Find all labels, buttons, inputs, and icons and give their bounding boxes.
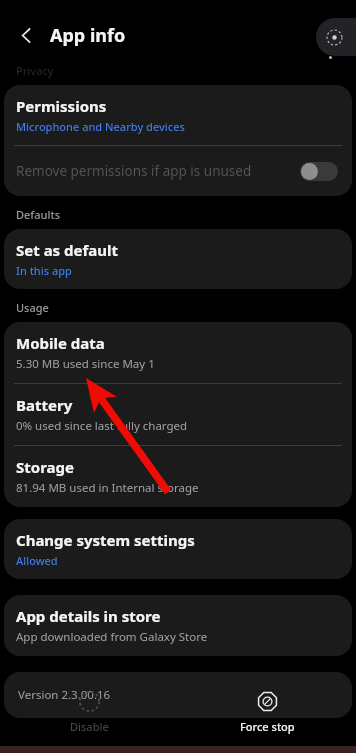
staticText: 81.94 MB used in Internal storage [16, 480, 199, 496]
staticText: Defaults [16, 207, 60, 222]
staticText: Mobile data [16, 333, 105, 353]
staticText: Battery [16, 395, 73, 415]
staticText: In this app [16, 263, 72, 278]
button[interactable]: Storage [4, 446, 352, 507]
button[interactable]: Permissions [4, 85, 352, 145]
button[interactable]: Change system settings [4, 519, 352, 579]
staticText: 5.30 MB used since May 1 [16, 356, 155, 372]
staticText: Remove permissions if app is unused [16, 162, 300, 180]
staticText: Storage [16, 457, 74, 477]
staticText: Set as default [16, 240, 119, 260]
staticText: Allowed [16, 553, 58, 568]
staticText: Permissions [16, 96, 107, 116]
button[interactable]: App details in store [4, 595, 352, 656]
staticText: Usage [16, 300, 49, 315]
staticText: Microphone and Nearby devices [16, 119, 185, 134]
staticText: App details in store [16, 606, 161, 626]
button[interactable]: Scan [316, 18, 356, 56]
button[interactable]: Remove permissions if app is unused [4, 146, 352, 196]
staticText: Version 2.3.00.16 [18, 687, 111, 703]
staticText: Change system settings [16, 530, 195, 550]
button[interactable]: Disable [0, 681, 178, 743]
button[interactable]: Force stop [178, 681, 356, 743]
button[interactable]: Set as default [4, 229, 352, 289]
staticText: App info [50, 23, 126, 48]
staticText: 0% used since last fully charged [16, 418, 188, 434]
staticText: Disable [70, 719, 109, 734]
button[interactable]: Mobile data [4, 322, 352, 383]
button[interactable]: Battery [4, 384, 352, 445]
staticText: App downloaded from Galaxy Store [16, 629, 208, 645]
staticText: Privacy [16, 63, 54, 78]
button[interactable]: Back [6, 15, 46, 55]
staticText: Force stop [240, 719, 295, 734]
